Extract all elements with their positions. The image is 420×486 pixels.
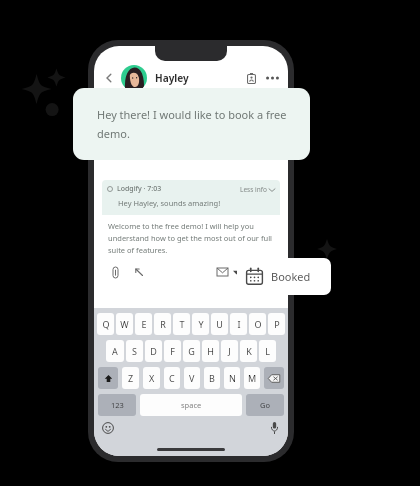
button[interactable]: I — [230, 313, 247, 335]
staticText: T — [179, 318, 185, 330]
button[interactable]: K — [240, 340, 257, 362]
button[interactable]: V — [184, 367, 200, 389]
staticText: Hey there! I would like to book a free d… — [97, 107, 290, 141]
button[interactable]: Backspace — [264, 367, 284, 389]
button[interactable]: X — [143, 367, 160, 389]
button[interactable]: N — [224, 367, 240, 389]
button[interactable]: Reply — [132, 265, 146, 279]
button[interactable]: Booked — [237, 258, 331, 295]
button[interactable]: H — [202, 340, 219, 362]
button[interactable]: A — [106, 340, 124, 362]
staticText: Z — [128, 372, 134, 384]
button[interactable]: Back — [101, 70, 117, 86]
staticText: R — [160, 318, 166, 330]
staticText: W — [120, 318, 129, 330]
staticText: Lodgify · 7:03 — [117, 184, 162, 194]
button[interactable]: Q — [97, 313, 114, 335]
staticText: H — [207, 345, 214, 357]
staticText: E — [141, 318, 147, 330]
button[interactable]: Send options — [217, 268, 240, 276]
button[interactable]: Y — [192, 313, 209, 335]
button[interactable]: Hey there! I would like to book a free d… — [73, 88, 310, 160]
button[interactable]: T — [173, 313, 190, 335]
button[interactable]: L — [259, 340, 276, 362]
button[interactable]: space — [140, 394, 242, 416]
button[interactable]: More options — [263, 69, 281, 87]
staticText: F — [170, 345, 175, 357]
staticText: A — [112, 345, 118, 357]
staticText: Go — [260, 400, 270, 410]
staticText: P — [274, 318, 280, 330]
staticText: Hey Hayley, sounds amazing! — [118, 198, 221, 208]
button[interactable]: Go — [246, 394, 284, 416]
staticText: K — [246, 345, 252, 357]
staticText: V — [189, 372, 195, 384]
staticText: C — [169, 372, 175, 384]
button[interactable]: D — [145, 340, 162, 362]
staticText: Less info — [240, 185, 267, 194]
staticText: Q — [102, 318, 110, 330]
button[interactable]: S — [126, 340, 143, 362]
staticText: Y — [198, 318, 204, 330]
staticText: O — [254, 318, 262, 330]
staticText: S — [132, 345, 137, 357]
staticText: J — [228, 345, 231, 357]
staticText: U — [216, 318, 223, 330]
button[interactable]: G — [183, 340, 200, 362]
staticText: D — [150, 345, 157, 357]
button[interactable]: U — [211, 313, 228, 335]
staticText: L — [265, 345, 270, 357]
staticText: Hayley — [155, 71, 189, 85]
staticText: M — [248, 372, 257, 384]
button[interactable]: W — [116, 313, 133, 335]
button[interactable]: E — [135, 313, 152, 335]
button[interactable]: P — [268, 313, 285, 335]
staticText: I — [237, 318, 241, 330]
staticText: G — [188, 345, 195, 357]
staticText: Booked — [271, 269, 311, 284]
button[interactable]: O — [249, 313, 266, 335]
staticText: Welcome to the free demo! I will help yo… — [108, 221, 274, 256]
staticText: X — [149, 372, 155, 384]
staticText: 123 — [111, 400, 124, 410]
button[interactable]: F — [164, 340, 181, 362]
button[interactable]: C — [164, 367, 180, 389]
staticText: B — [209, 372, 215, 384]
button[interactable]: R — [154, 313, 171, 335]
button[interactable]: Z — [122, 367, 139, 389]
button[interactable]: Less info — [240, 185, 275, 194]
staticText: space — [181, 400, 202, 410]
button[interactable]: Emoji — [101, 421, 115, 435]
button[interactable]: Shift — [98, 367, 118, 389]
button[interactable]: M — [244, 367, 260, 389]
button[interactable]: B — [204, 367, 220, 389]
button[interactable]: Dictate — [267, 421, 281, 435]
staticText: N — [229, 372, 236, 384]
button[interactable]: Attach file — [108, 265, 122, 279]
button[interactable]: J — [221, 340, 238, 362]
button[interactable]: 123 — [98, 394, 136, 416]
button[interactable]: Contact info — [242, 69, 260, 87]
